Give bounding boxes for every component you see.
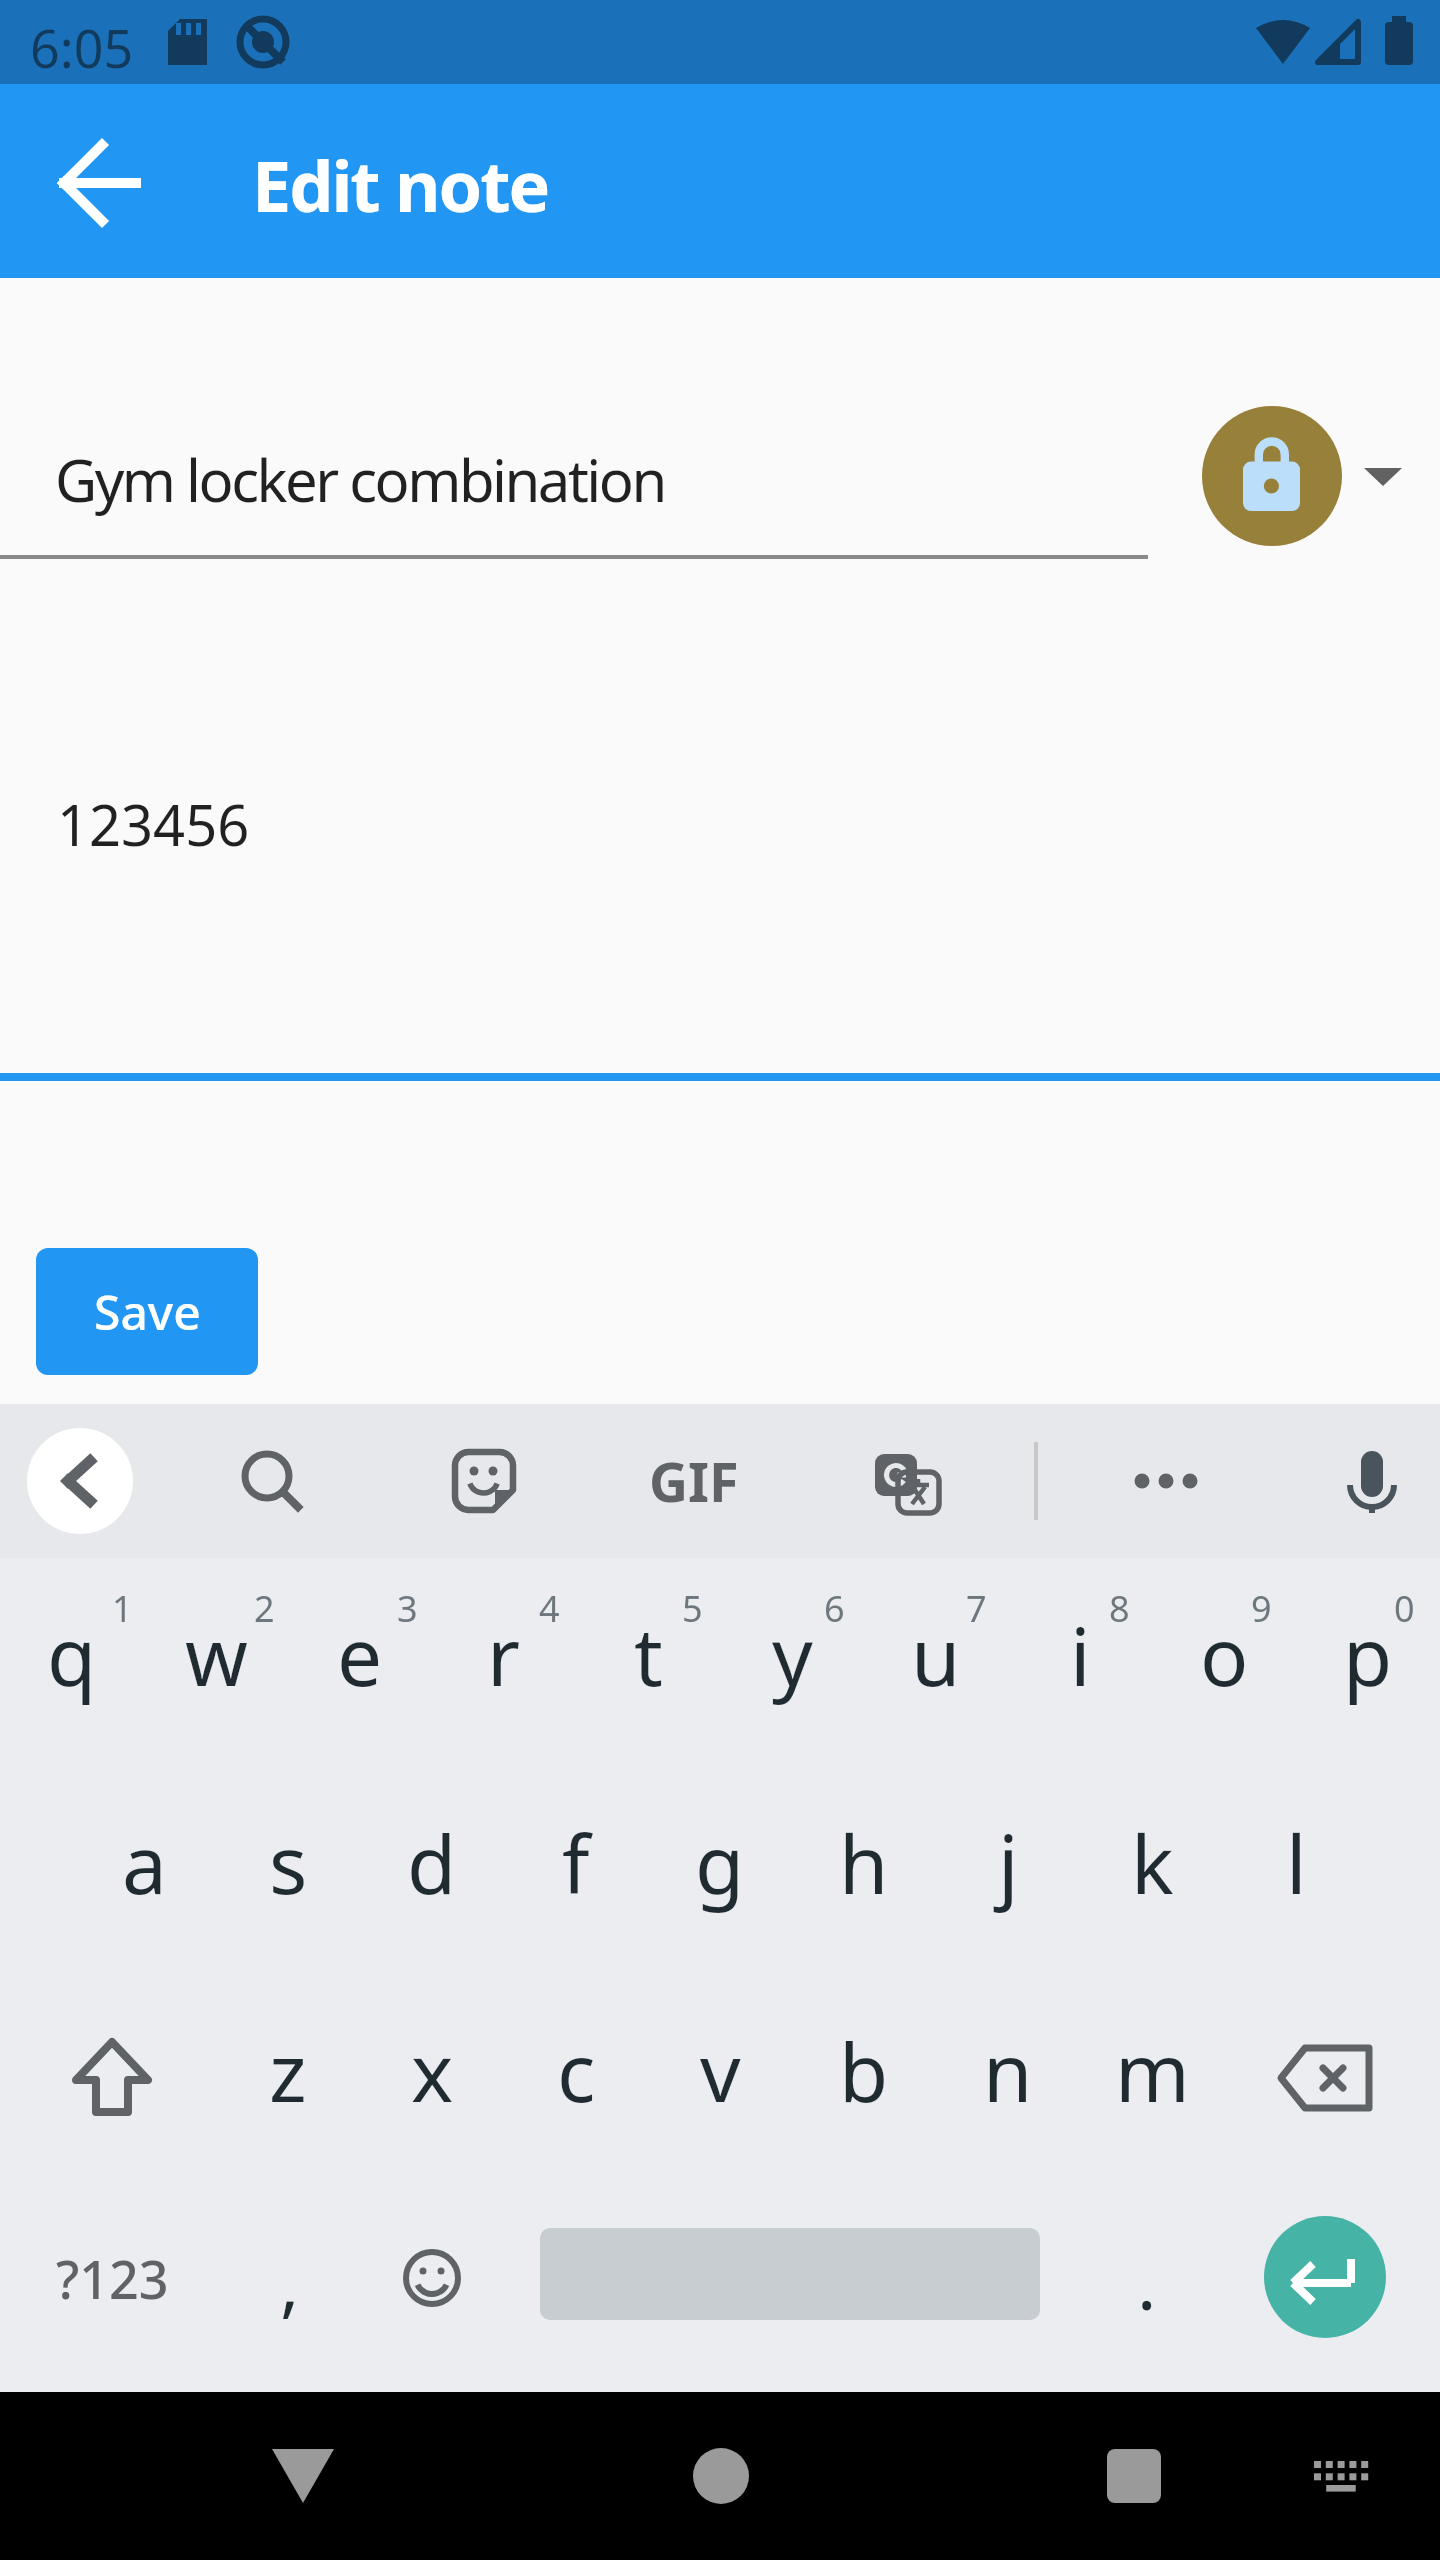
staticText: g [695,1808,745,1917]
button[interactable]: x [360,1966,504,2174]
button[interactable]: o [1152,1550,1296,1758]
button[interactable]: n [936,1966,1080,2174]
button[interactable]: Save [36,1248,258,1375]
button[interactable]: u [864,1550,1008,1758]
button[interactable] [360,2194,504,2362]
button[interactable]: a [72,1758,216,1966]
staticText: m [1115,2016,1190,2125]
button[interactable] [1235,1994,1415,2162]
button[interactable]: g [648,1758,792,1966]
button[interactable]: z [216,1966,360,2174]
staticText: 3 [397,1584,418,1633]
button[interactable] [424,1421,544,1541]
button[interactable] [847,1421,967,1541]
staticText: w [185,1600,248,1709]
button[interactable]: f [504,1758,648,1966]
button[interactable]: w [144,1550,288,1758]
button[interactable]: , [218,2178,362,2386]
staticText: o [1200,1600,1249,1709]
staticText: t [634,1600,663,1709]
staticText: j [998,1808,1019,1917]
button[interactable] [1312,1421,1432,1541]
staticText: 0 [1394,1584,1415,1633]
button[interactable]: ?123 [22,2194,202,2362]
staticText: a [122,1808,167,1917]
staticText: 8 [1109,1584,1130,1633]
staticText: 2 [254,1584,275,1633]
button[interactable]: v [648,1966,792,2174]
staticText: p [1343,1600,1393,1709]
button[interactable] [661,2407,781,2545]
button[interactable] [1264,2216,1386,2338]
button[interactable] [22,1994,202,2162]
button[interactable]: s [216,1758,360,1966]
button[interactable] [1106,1421,1226,1541]
staticText: 5 [682,1584,703,1633]
button[interactable] [243,2407,363,2545]
button[interactable]: k [1080,1758,1224,1966]
staticText: 6 [824,1584,845,1633]
button[interactable]: p [1296,1550,1440,1758]
staticText: , [280,2233,300,2331]
button[interactable] [1202,406,1342,546]
staticText: n [983,2016,1033,2125]
staticText: Edit note [252,137,549,232]
button[interactable]: l [1224,1758,1368,1966]
staticText: z [269,2016,307,2125]
staticText: i [1070,1600,1091,1709]
staticText: ?123 [56,2243,169,2314]
staticText: f [562,1808,590,1917]
button[interactable]: r [432,1550,576,1758]
staticText: s [269,1808,308,1917]
button[interactable] [1281,2407,1401,2545]
button[interactable] [40,123,160,243]
staticText: y [772,1600,813,1709]
button[interactable]: q [0,1550,144,1758]
button[interactable]: GIF [634,1421,754,1541]
staticText: 7 [966,1584,987,1633]
button[interactable]: e [288,1550,432,1758]
staticText: x [411,2016,454,2125]
button[interactable]: t [576,1550,720,1758]
button[interactable]: c [504,1966,648,2174]
staticText: GIF [649,1444,739,1518]
button[interactable]: h [792,1758,936,1966]
staticText: 6:05 [30,12,134,83]
staticText: . [1137,2233,1157,2331]
button[interactable]: d [360,1758,504,1966]
button[interactable] [27,1428,133,1534]
staticText: h [839,1808,889,1917]
staticText: l [1286,1808,1307,1917]
staticText: k [1131,1808,1174,1917]
staticText: 1 [112,1584,133,1633]
staticText: c [557,2016,596,2125]
staticText: Save [94,1279,201,1344]
staticText: 9 [1251,1584,1272,1633]
button[interactable] [1074,2407,1194,2545]
staticText: r [487,1600,521,1709]
button[interactable]: j [936,1758,1080,1966]
staticText: b [839,2016,889,2125]
staticText: e [337,1600,383,1709]
staticText: v [700,2016,741,2125]
button[interactable] [212,1421,332,1541]
button[interactable]: m [1080,1966,1224,2174]
button[interactable]: y [720,1550,864,1758]
staticText: 4 [539,1584,560,1633]
button[interactable]: b [792,1966,936,2174]
button[interactable]: . [1075,2178,1219,2386]
staticText: Gym locker combination [55,440,665,519]
staticText: u [911,1600,961,1709]
button[interactable]: i [1008,1550,1152,1758]
staticText: q [47,1600,97,1709]
staticText: d [407,1808,457,1917]
staticText: 123456 [57,786,250,862]
